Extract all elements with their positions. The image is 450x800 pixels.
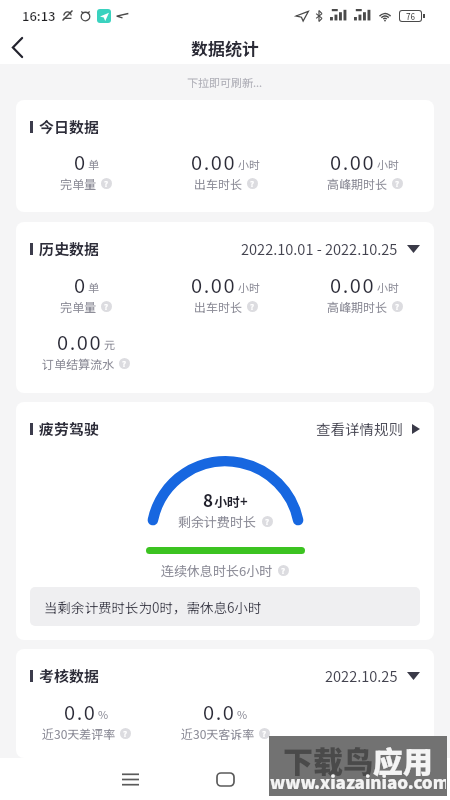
staticText: ? <box>395 178 400 189</box>
staticText: 下载鸟 <box>283 738 373 781</box>
staticText: 0 <box>74 147 87 175</box>
staticText: 今日数据 <box>39 116 100 137</box>
staticText: 数据统计 <box>191 35 259 60</box>
staticText: ? <box>395 301 400 312</box>
staticText: 高峰期时长 <box>327 175 388 192</box>
button[interactable]: 2022.10.01 - 2022.10.25 <box>241 238 420 259</box>
button[interactable]: 2022.10.25 <box>325 665 420 686</box>
staticText: 2022.10.01 - 2022.10.25 <box>241 238 398 259</box>
staticText: 小时 <box>238 156 260 172</box>
staticText: 疲劳驾驶 <box>39 418 100 439</box>
staticText: ? <box>122 358 127 369</box>
staticText: 0.00 <box>330 147 376 175</box>
staticText: 连续休息时长6小时 <box>161 561 273 580</box>
button[interactable]: 最近任务 <box>110 759 150 799</box>
staticText: 出车时长 <box>194 175 243 192</box>
staticText: 剩余计费时长 <box>178 512 257 531</box>
staticText: 近30天差评率 <box>42 725 116 742</box>
staticText: 76 <box>406 11 416 21</box>
staticText: 考核数据 <box>39 665 100 686</box>
staticText: www.xiazainiao.com <box>270 769 446 794</box>
staticText: 小时 <box>238 279 260 295</box>
staticText: 小时+ <box>214 492 248 511</box>
staticText: ? <box>250 178 255 189</box>
staticText: 16:13 <box>22 6 56 25</box>
staticText: 0.00 <box>191 147 237 175</box>
staticText: % <box>98 706 109 722</box>
staticText: 小时 <box>377 156 399 172</box>
button[interactable]: 查看详情规则 <box>316 418 420 439</box>
staticText: 0.00 <box>191 270 237 298</box>
staticText: ? <box>123 728 128 739</box>
staticText: 元 <box>104 336 115 352</box>
staticText: 8 <box>203 487 214 512</box>
staticText: % <box>237 706 248 722</box>
staticText: 0.0 <box>64 697 97 725</box>
staticText: 高峰期时长 <box>327 298 388 315</box>
staticText: ? <box>262 728 267 739</box>
staticText: 0.00 <box>330 270 376 298</box>
staticText: 单 <box>88 156 99 172</box>
staticText: 0.0 <box>203 697 236 725</box>
staticText: ? <box>281 565 286 576</box>
staticText: 近30天客诉率 <box>181 725 255 742</box>
staticText: ? <box>104 178 109 189</box>
staticText: 应用 <box>373 738 433 781</box>
staticText: ? <box>104 301 109 312</box>
staticText: 订单结算流水 <box>42 355 115 372</box>
staticText: 单 <box>88 279 99 295</box>
button[interactable]: 返回 <box>0 30 34 64</box>
staticText: 出车时长 <box>194 298 243 315</box>
staticText: 完单量 <box>60 175 97 192</box>
staticText: ? <box>250 301 255 312</box>
staticText: 0 <box>74 270 87 298</box>
staticText: 查看详情规则 <box>316 418 403 439</box>
button[interactable]: 主页 <box>205 759 245 799</box>
staticText: 下拉即可刷新... <box>187 74 263 90</box>
staticText: 0.00 <box>57 327 103 355</box>
staticText: 小时 <box>377 279 399 295</box>
staticText: ? <box>265 516 270 527</box>
staticText: 2022.10.25 <box>325 665 398 686</box>
staticText: 当剩余计费时长为0时，需休息6小时 <box>44 597 262 617</box>
staticText: 完单量 <box>60 298 97 315</box>
staticText: 历史数据 <box>39 238 100 259</box>
